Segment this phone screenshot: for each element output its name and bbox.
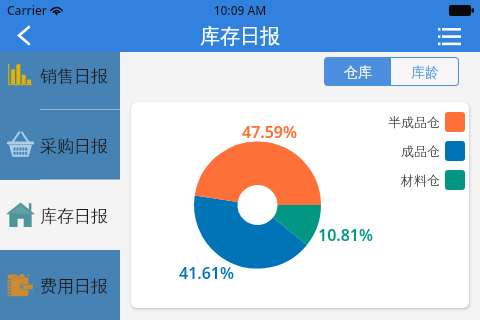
staticText: 半成品仓	[375, 114, 440, 130]
staticText: 成品仓	[375, 143, 440, 159]
staticText: 库存日报	[0, 24, 480, 49]
button[interactable]: 销售日报	[0, 40, 120, 110]
button[interactable]: Back	[0, 20, 44, 52]
button[interactable]: 费用日报	[0, 250, 120, 320]
staticText: 10.81%	[318, 224, 374, 246]
button[interactable]: 库存日报	[0, 180, 120, 250]
staticText: 材料仓	[375, 172, 440, 188]
button[interactable]: 仓库	[324, 57, 391, 86]
staticText: 库存日报	[40, 206, 108, 227]
staticText: Carrier	[7, 2, 47, 18]
button[interactable]: 库龄	[391, 58, 458, 85]
staticText: 仓库	[344, 64, 372, 82]
button[interactable]: 采购日报	[0, 110, 120, 180]
staticText: 采购日报	[40, 136, 108, 157]
staticText: 销售日报	[40, 66, 108, 87]
staticText: 47.59%	[242, 121, 298, 143]
staticText: 库龄	[411, 64, 439, 82]
button[interactable]: Menu	[430, 20, 475, 52]
staticText: 41.61%	[179, 262, 235, 284]
staticText: 10:09 AM	[0, 2, 480, 18]
staticText: 费用日报	[40, 276, 108, 297]
